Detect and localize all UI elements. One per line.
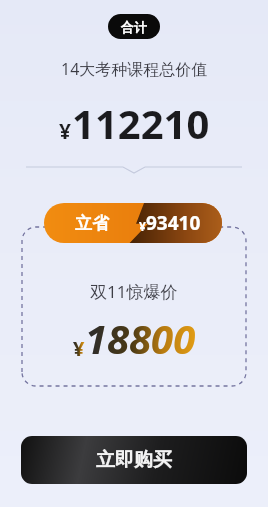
staticText: ¥ (139, 218, 146, 234)
staticText: 合计 (121, 19, 147, 35)
staticText: 立即购买 (96, 448, 172, 472)
staticText: 立省 (75, 213, 109, 234)
staticText: 18800 (85, 311, 196, 365)
staticText: ¥ (59, 117, 72, 146)
button[interactable]: 合计 (108, 14, 160, 39)
staticText: 14大考种课程总价值 (61, 58, 208, 80)
button[interactable]: 立省 (44, 203, 222, 243)
staticText: 双11惊爆价 (90, 280, 178, 303)
staticText: 112210 (72, 96, 210, 150)
staticText: ¥ (73, 335, 85, 362)
button[interactable]: 立即购买 (21, 436, 247, 484)
staticText: 93410 (146, 210, 201, 236)
